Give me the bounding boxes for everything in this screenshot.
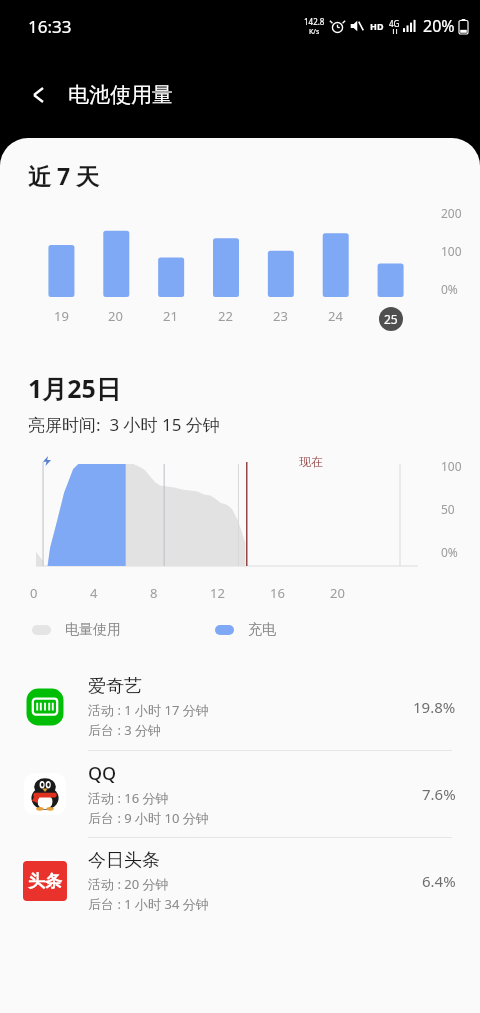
staticText: 0 xyxy=(30,584,38,602)
staticText: 19.8% xyxy=(413,697,456,717)
staticText: 8 xyxy=(150,584,158,602)
staticText: 200 xyxy=(441,205,462,221)
button[interactable]: Back xyxy=(30,85,50,105)
staticText: 充电 xyxy=(248,621,276,639)
staticText: 今日头条 xyxy=(88,849,160,872)
staticText: 4 xyxy=(90,584,98,602)
staticText: 25 xyxy=(384,311,398,327)
staticText: 后台 : 1 小时 34 分钟 xyxy=(88,895,209,913)
staticText: 19 xyxy=(54,307,69,325)
staticText: 爱奇艺 xyxy=(88,675,142,698)
staticText: 142.8 xyxy=(304,16,325,27)
staticText: 活动 : 20 分钟 xyxy=(88,875,169,893)
staticText: 23 xyxy=(273,307,288,325)
staticText: 16:33 xyxy=(28,15,72,38)
staticText: 100 xyxy=(441,458,462,474)
staticText: 活动 : 1 小时 17 分钟 xyxy=(88,701,209,719)
staticText: 0% xyxy=(441,544,458,560)
staticText: 16 xyxy=(270,584,285,602)
staticText: 24 xyxy=(328,307,343,325)
staticText: 电量使用 xyxy=(65,621,121,639)
staticText: 20% xyxy=(423,15,455,37)
staticText: 1月25日 xyxy=(28,371,121,405)
staticText: 近 7 天 xyxy=(28,160,100,191)
button[interactable]: 头条 xyxy=(0,838,480,924)
staticText: 100 xyxy=(441,243,462,259)
staticText: 电池使用量 xyxy=(68,82,173,108)
staticText: 12 xyxy=(210,584,225,602)
staticText: 头条 xyxy=(28,871,62,892)
staticText: 20 xyxy=(330,584,345,602)
staticText: 0% xyxy=(441,281,458,297)
button[interactable]: QQ xyxy=(0,751,480,838)
staticText: 4G xyxy=(389,18,400,29)
staticText: 21 xyxy=(163,307,178,325)
staticText: QQ xyxy=(88,761,117,786)
staticText: 后台 : 9 小时 10 分钟 xyxy=(88,809,209,827)
staticText: 活动 : 16 分钟 xyxy=(88,789,169,807)
staticText: 22 xyxy=(218,307,233,325)
staticText: 6.4% xyxy=(422,871,456,891)
staticText: HD xyxy=(370,20,384,32)
staticText: 亮屏时间: 3 小时 15 分钟 xyxy=(28,413,220,436)
button[interactable]: 爱奇艺 xyxy=(0,664,480,751)
staticText: 后台 : 3 分钟 xyxy=(88,721,162,739)
staticText: K/s xyxy=(309,27,320,37)
staticText: 20 xyxy=(108,307,123,325)
staticText: 7.6% xyxy=(422,784,456,804)
staticText: 现在 xyxy=(299,454,323,469)
staticText: 50 xyxy=(441,501,455,517)
button[interactable]: Back xyxy=(0,52,480,138)
